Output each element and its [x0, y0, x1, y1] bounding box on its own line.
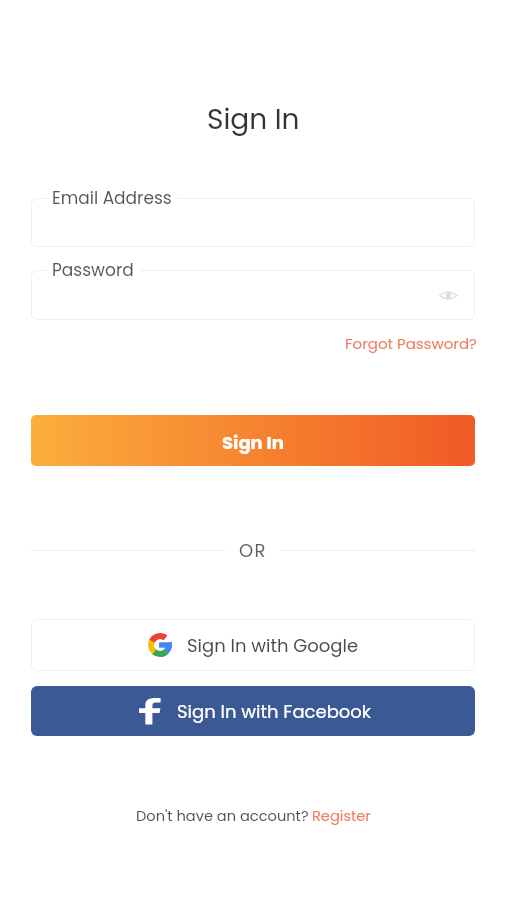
button[interactable]: Sign In with Google: [31, 619, 475, 671]
button[interactable]: Show password: [435, 282, 461, 308]
staticText: Password: [52, 258, 134, 282]
staticText: Don't have an account?: [136, 806, 309, 826]
button[interactable]: [31, 198, 475, 247]
staticText: Register: [312, 806, 371, 826]
button[interactable]: Forgot Password?: [345, 333, 477, 354]
staticText: Sign In with Google: [187, 633, 359, 658]
button[interactable]: Register: [312, 806, 371, 826]
button[interactable]: [31, 270, 475, 320]
button[interactable]: Sign In with Facebook: [31, 686, 475, 736]
staticText: Sign In: [222, 430, 284, 455]
button[interactable]: Sign In: [31, 415, 475, 466]
staticText: Forgot Password?: [345, 333, 477, 354]
staticText: Sign In: [207, 100, 300, 138]
staticText: OR: [239, 538, 267, 563]
staticText: Email Address: [52, 186, 172, 210]
staticText: Sign In with Facebook: [177, 699, 372, 724]
